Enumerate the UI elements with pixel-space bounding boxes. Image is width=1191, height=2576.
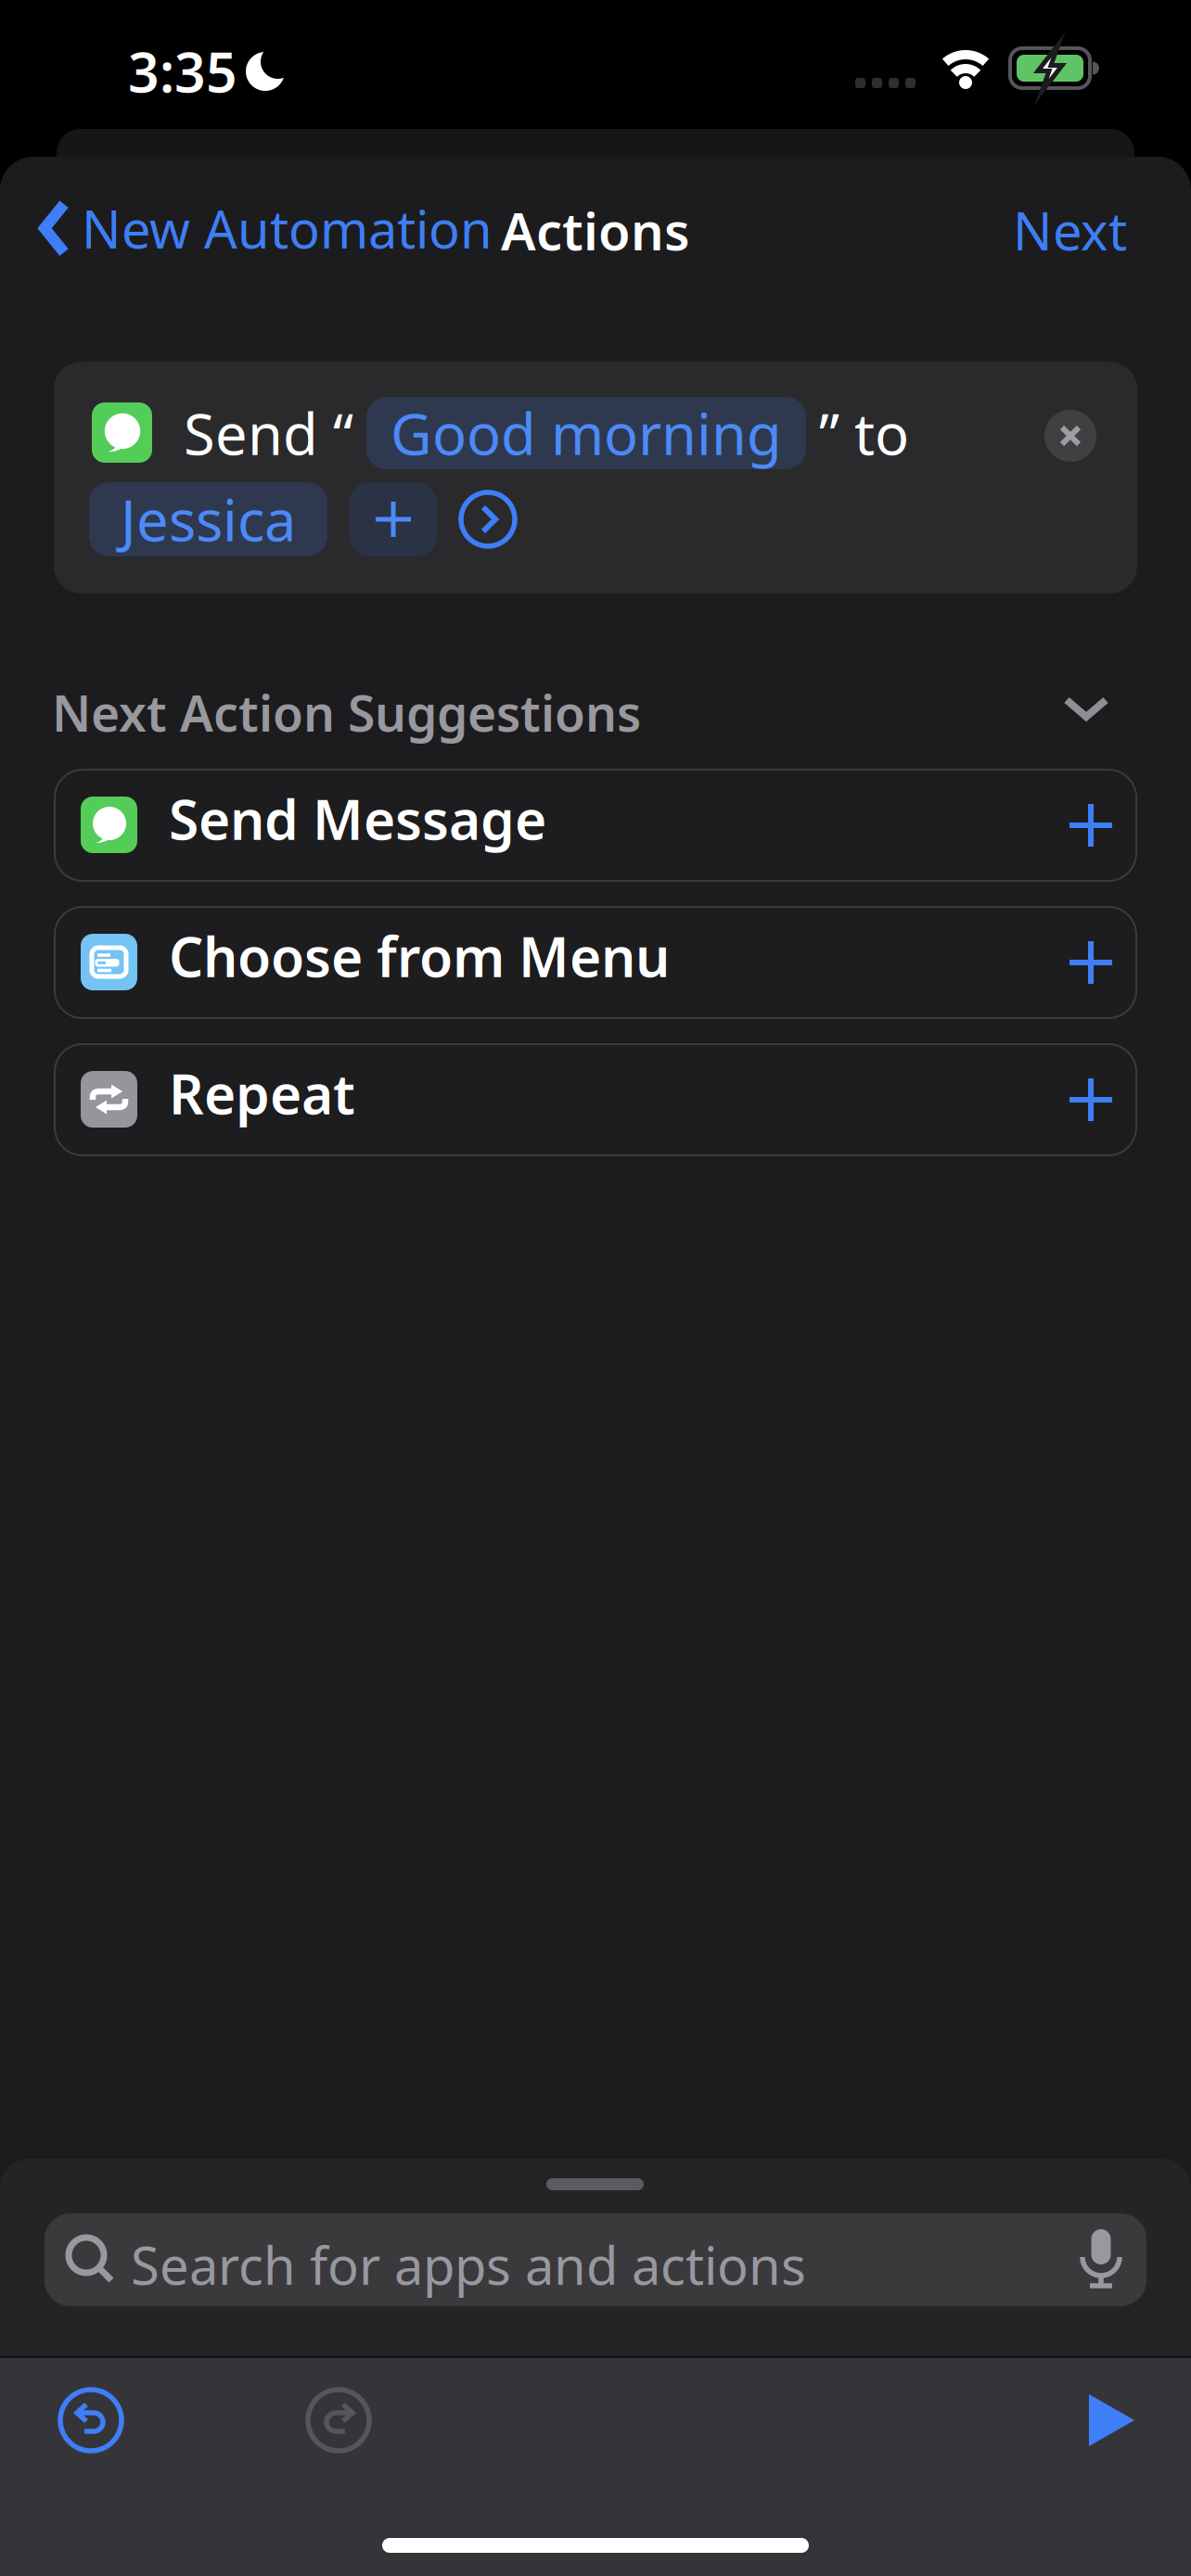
staticText: New Automation bbox=[82, 194, 493, 263]
button[interactable]: Add recipient bbox=[350, 482, 437, 556]
button[interactable]: Good morning bbox=[366, 397, 806, 469]
button[interactable]: Run bbox=[1086, 2392, 1138, 2448]
button[interactable]: Collapse suggestions bbox=[1063, 696, 1109, 721]
button[interactable]: Choose from Menu bbox=[55, 907, 1136, 1018]
button[interactable]: Next bbox=[1013, 196, 1127, 265]
staticText: Choose from Menu bbox=[169, 920, 670, 992]
button[interactable]: Search for apps and actions bbox=[45, 2213, 1146, 2306]
staticText: Send Message bbox=[169, 783, 546, 855]
button[interactable]: Undo bbox=[58, 2388, 123, 2453]
button[interactable]: Show more bbox=[459, 491, 517, 548]
button[interactable]: Remove action bbox=[1044, 410, 1096, 462]
staticText: Actions bbox=[501, 196, 690, 265]
staticText: Jessica bbox=[121, 482, 296, 557]
button[interactable]: Jessica bbox=[89, 482, 327, 556]
staticText: Next bbox=[1013, 196, 1127, 265]
button[interactable]: Repeat bbox=[55, 1044, 1136, 1155]
staticText: Send “ bbox=[184, 395, 353, 471]
staticText: Repeat bbox=[169, 1057, 355, 1129]
staticText: Next Action Suggestions bbox=[52, 680, 641, 745]
staticText: Good morning bbox=[391, 395, 782, 471]
staticText: 3:35 bbox=[128, 35, 237, 107]
button[interactable]: Back bbox=[39, 194, 493, 263]
button[interactable]: Redo bbox=[306, 2388, 371, 2453]
button[interactable]: Send Message bbox=[55, 770, 1136, 881]
staticText: ” to bbox=[819, 395, 909, 471]
staticText: Search for apps and actions bbox=[131, 2230, 806, 2299]
